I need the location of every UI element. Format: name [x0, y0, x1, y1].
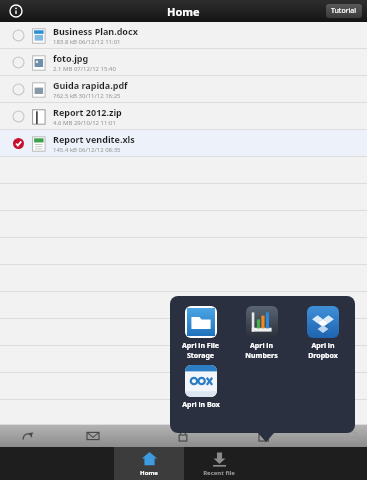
staticText: 762.5 kB 30/11/12 16:25 — [53, 92, 121, 100]
staticText: Report 2012.zip — [53, 106, 122, 118]
staticText: Apri in Box — [182, 400, 220, 410]
button[interactable]: Lock — [172, 425, 194, 447]
button[interactable]: Report vendite.xls — [0, 130, 367, 157]
button[interactable]: foto.jpg — [0, 49, 367, 76]
button[interactable]: Tutorial — [331, 6, 357, 16]
button[interactable]: Business Plan.docx — [0, 22, 367, 49]
staticText: Apri in Dropbox — [308, 341, 338, 361]
button[interactable]: Apri in Box — [170, 365, 231, 410]
staticText: Report vendite.xls — [53, 133, 135, 145]
staticText: Home — [140, 469, 158, 477]
staticText: 145.4 kB 06/12/12 08:35 — [53, 146, 121, 154]
staticText: 183.8 kB 06/12/12 11:01 — [53, 38, 121, 46]
button[interactable]: Apri in Numbers — [231, 306, 292, 361]
button[interactable]: Apri in File Storage — [170, 306, 231, 361]
staticText: Tutorial — [331, 6, 357, 16]
staticText: foto.jpg — [53, 52, 89, 64]
button[interactable]: Report 2012.zip — [0, 103, 367, 130]
button[interactable]: Image — [339, 425, 361, 447]
staticText: Apri in File Storage — [182, 341, 219, 361]
staticText: Business Plan.docx — [53, 25, 138, 37]
button[interactable]: Apri in Dropbox — [292, 306, 353, 361]
staticText: Home — [167, 4, 200, 19]
button[interactable]: Recent file — [184, 447, 254, 480]
staticText: 4.6 MB 29/10/12 11:01 — [53, 119, 116, 127]
button[interactable]: Mail — [82, 425, 104, 447]
staticText: 2.1 MB 07/12/12 15:40 — [53, 65, 116, 73]
button[interactable]: Undo — [17, 425, 39, 447]
button[interactable]: Share — [254, 425, 276, 447]
staticText: Recent file — [203, 469, 235, 477]
staticText: Guida rapida.pdf — [53, 79, 128, 91]
button[interactable]: Guida rapida.pdf — [0, 76, 367, 103]
staticText: Apri in Numbers — [245, 341, 278, 361]
button[interactable]: Home — [114, 447, 184, 480]
button[interactable]: Info — [8, 3, 24, 19]
